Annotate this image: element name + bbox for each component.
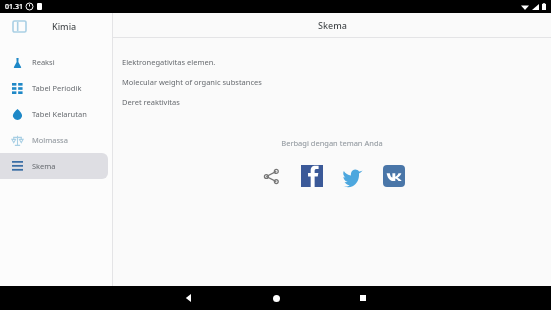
staticText: Molmassa rekenmachine [32, 135, 105, 145]
button[interactable]: Tabel Periodik [0, 75, 108, 101]
button[interactable]: Share on Facebook [297, 161, 327, 191]
button[interactable]: Toggle drawer [0, 13, 112, 39]
button[interactable]: Recents [346, 286, 380, 310]
staticText: Kimia [52, 20, 77, 32]
button[interactable]: Skema [0, 153, 108, 179]
button[interactable]: Share on VK [379, 161, 409, 191]
button[interactable]: Elektronegativitas elemen. [113, 52, 551, 72]
other: Toggle drawer [12, 19, 26, 33]
button[interactable]: Molmassa rekenmachine [0, 127, 108, 153]
button[interactable]: Share on Twitter [338, 161, 368, 191]
staticText: Skema [32, 161, 56, 171]
staticText: Molecular weight of organic substances [122, 77, 262, 87]
button[interactable]: Deret reaktivitas [113, 92, 551, 112]
staticText: 01.31 [5, 2, 23, 12]
staticText: Tabel Periodik [32, 83, 82, 93]
button[interactable]: Home [259, 286, 293, 310]
staticText: Tabel Kelarutan [32, 109, 87, 119]
staticText: Reaksi [32, 57, 55, 67]
staticText: Berbagi dengan teman Anda [113, 138, 551, 148]
button[interactable]: Tabel Kelarutan [0, 101, 108, 127]
button[interactable]: Back [172, 286, 206, 310]
button[interactable]: Molecular weight of organic substances [113, 72, 551, 92]
staticText: Elektronegativitas elemen. [122, 57, 216, 67]
staticText: Skema [318, 19, 347, 31]
button[interactable]: Share [256, 161, 286, 191]
button[interactable]: Reaksi [0, 49, 108, 75]
staticText: Deret reaktivitas [122, 97, 180, 107]
